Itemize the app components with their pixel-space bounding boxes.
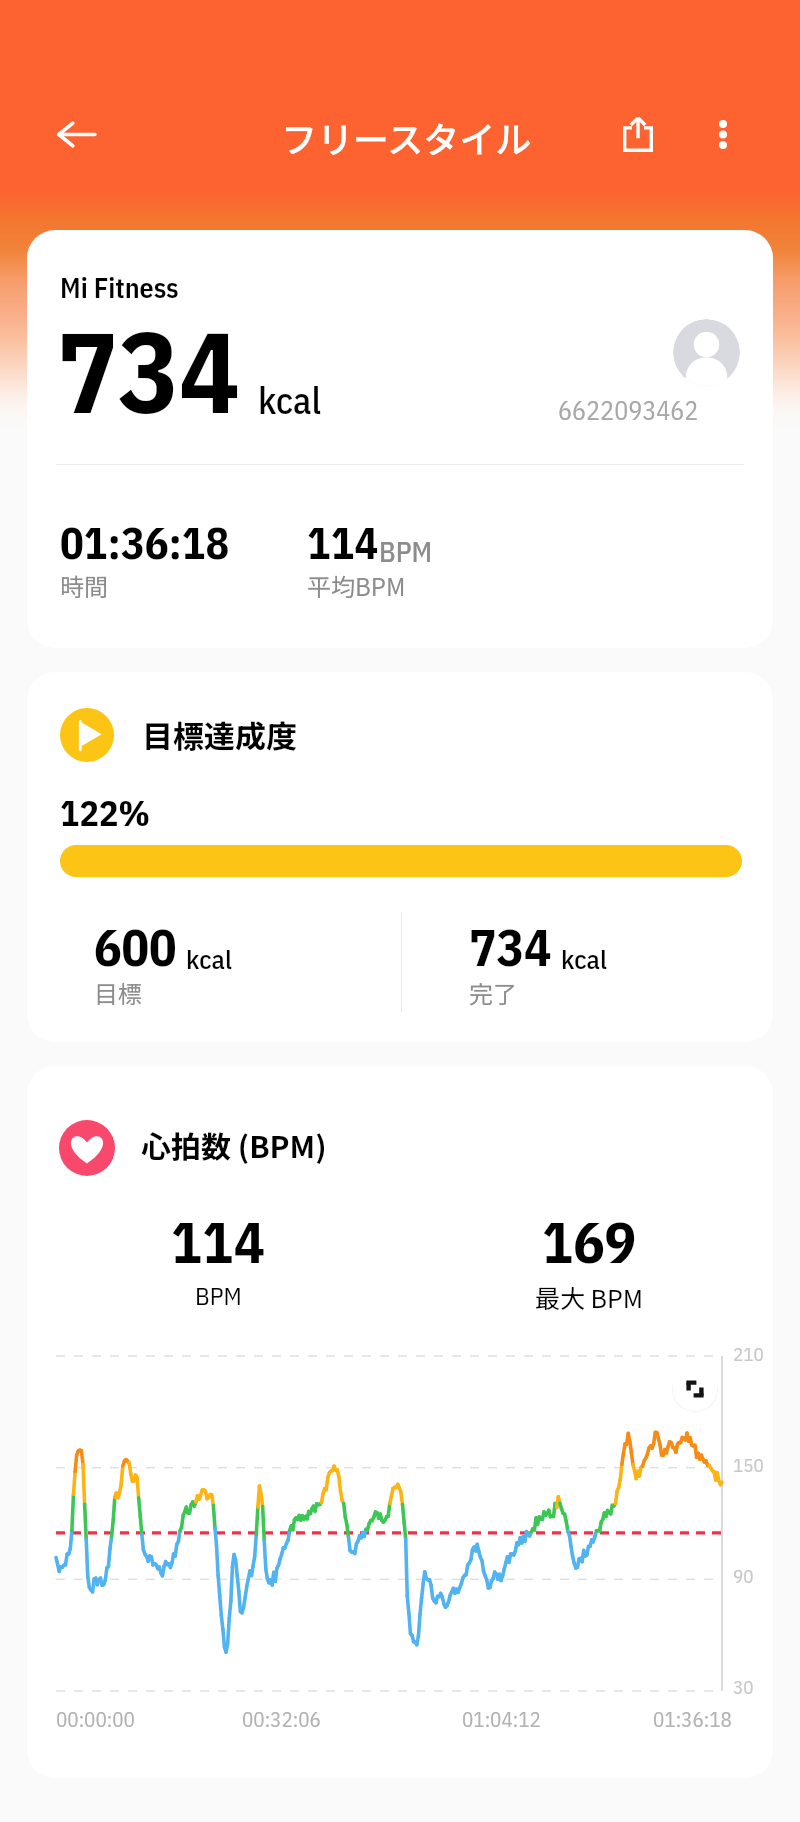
- staticText: 210: [733, 1342, 764, 1367]
- staticText: kcal: [258, 376, 322, 424]
- staticText: 心拍数 (BPM): [141, 1123, 327, 1166]
- staticText: 00:00:00: [56, 1705, 135, 1732]
- button[interactable]: Mi Fitness: [27, 230, 773, 648]
- staticText: 122%: [60, 789, 151, 836]
- staticText: フリースタイル: [281, 111, 532, 163]
- staticText: 01:04:12: [462, 1705, 541, 1732]
- button[interactable]: 心拍数 (BPM): [27, 1066, 773, 1778]
- button[interactable]: Share: [607, 103, 669, 165]
- staticText: 600: [94, 914, 177, 980]
- staticText: BPM: [379, 533, 433, 569]
- button[interactable]: Back: [47, 105, 105, 163]
- staticText: 90: [733, 1564, 754, 1589]
- staticText: 6622093462: [558, 393, 699, 427]
- staticText: 目標達成度: [142, 712, 297, 757]
- staticText: 00:32:06: [242, 1705, 321, 1732]
- staticText: 目標: [94, 975, 142, 1010]
- staticText: 01:36:18: [60, 514, 230, 571]
- staticText: BPM: [195, 1279, 242, 1312]
- staticText: 114: [171, 1204, 265, 1279]
- staticText: 734: [469, 914, 552, 980]
- staticText: 150: [733, 1453, 764, 1478]
- staticText: kcal: [561, 941, 608, 976]
- button[interactable]: Expand chart: [672, 1366, 718, 1412]
- staticText: 30: [733, 1675, 754, 1700]
- staticText: 時間: [60, 568, 108, 603]
- button[interactable]: More options: [692, 103, 754, 165]
- staticText: 01:36:18: [653, 1705, 732, 1732]
- button[interactable]: 目標達成度: [27, 672, 773, 1042]
- staticText: 完了: [469, 975, 517, 1010]
- staticText: Mi Fitness: [60, 269, 179, 305]
- staticText: 最大 BPM: [535, 1279, 644, 1315]
- staticText: 114: [307, 514, 379, 571]
- staticText: 169: [542, 1204, 636, 1279]
- staticText: 平均BPM: [307, 568, 406, 603]
- staticText: 734: [57, 297, 241, 444]
- staticText: kcal: [186, 941, 233, 976]
